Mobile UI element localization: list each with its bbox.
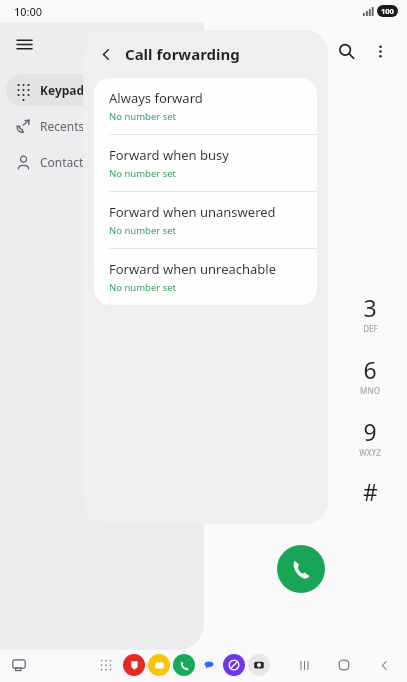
button[interactable]: 6 [344,354,396,394]
button[interactable]: Menu [8,28,40,60]
button[interactable]: Recents [289,650,319,680]
staticText: MNO [360,385,380,394]
button[interactable]: Recents [6,110,144,142]
staticText: DEF [363,323,378,332]
button[interactable]: Contacts [6,146,144,178]
button[interactable]: # [344,474,396,508]
staticText: 100 [381,6,394,16]
button[interactable] [198,654,220,676]
staticText: No number set [109,110,176,123]
staticText: Always forward [109,89,203,107]
staticText: No number set [109,224,176,237]
button[interactable]: Apps [93,652,119,678]
button[interactable]: 9 [344,416,396,456]
staticText: Call forwarding [125,44,240,64]
button[interactable]: Back [91,39,121,69]
button[interactable] [173,654,195,676]
button[interactable]: Display [6,652,32,678]
button[interactable] [148,654,170,676]
staticText: 6 [363,354,377,385]
staticText: Forward when busy [109,146,229,164]
staticText: Keypad [40,82,85,98]
button[interactable]: Call [277,545,325,593]
staticText: Forward when unreachable [109,260,277,278]
button[interactable]: Forward when unreachable [94,249,317,305]
button[interactable]: Forward when busy [94,135,317,191]
staticText: 9 [363,416,377,447]
button[interactable] [248,654,270,676]
button[interactable]: Home [329,650,359,680]
staticText: No number set [109,167,176,180]
button[interactable]: Search [329,34,363,68]
button[interactable]: Back [369,650,399,680]
staticText: Contacts [40,154,90,170]
staticText: WXYZ [359,447,381,456]
staticText: 10:00 [14,4,43,19]
button[interactable] [223,654,245,676]
staticText: Recents [40,118,85,134]
button[interactable]: Always forward [94,78,317,134]
button[interactable] [123,654,145,676]
staticText: # [363,476,378,507]
staticText: No number set [109,281,176,294]
button[interactable]: 3 [344,292,396,332]
staticText: Forward when unanswered [109,203,276,221]
button[interactable]: Keypad [6,74,144,106]
staticText: 3 [363,292,377,323]
button[interactable]: More options [363,34,397,68]
button[interactable]: Forward when unanswered [94,192,317,248]
